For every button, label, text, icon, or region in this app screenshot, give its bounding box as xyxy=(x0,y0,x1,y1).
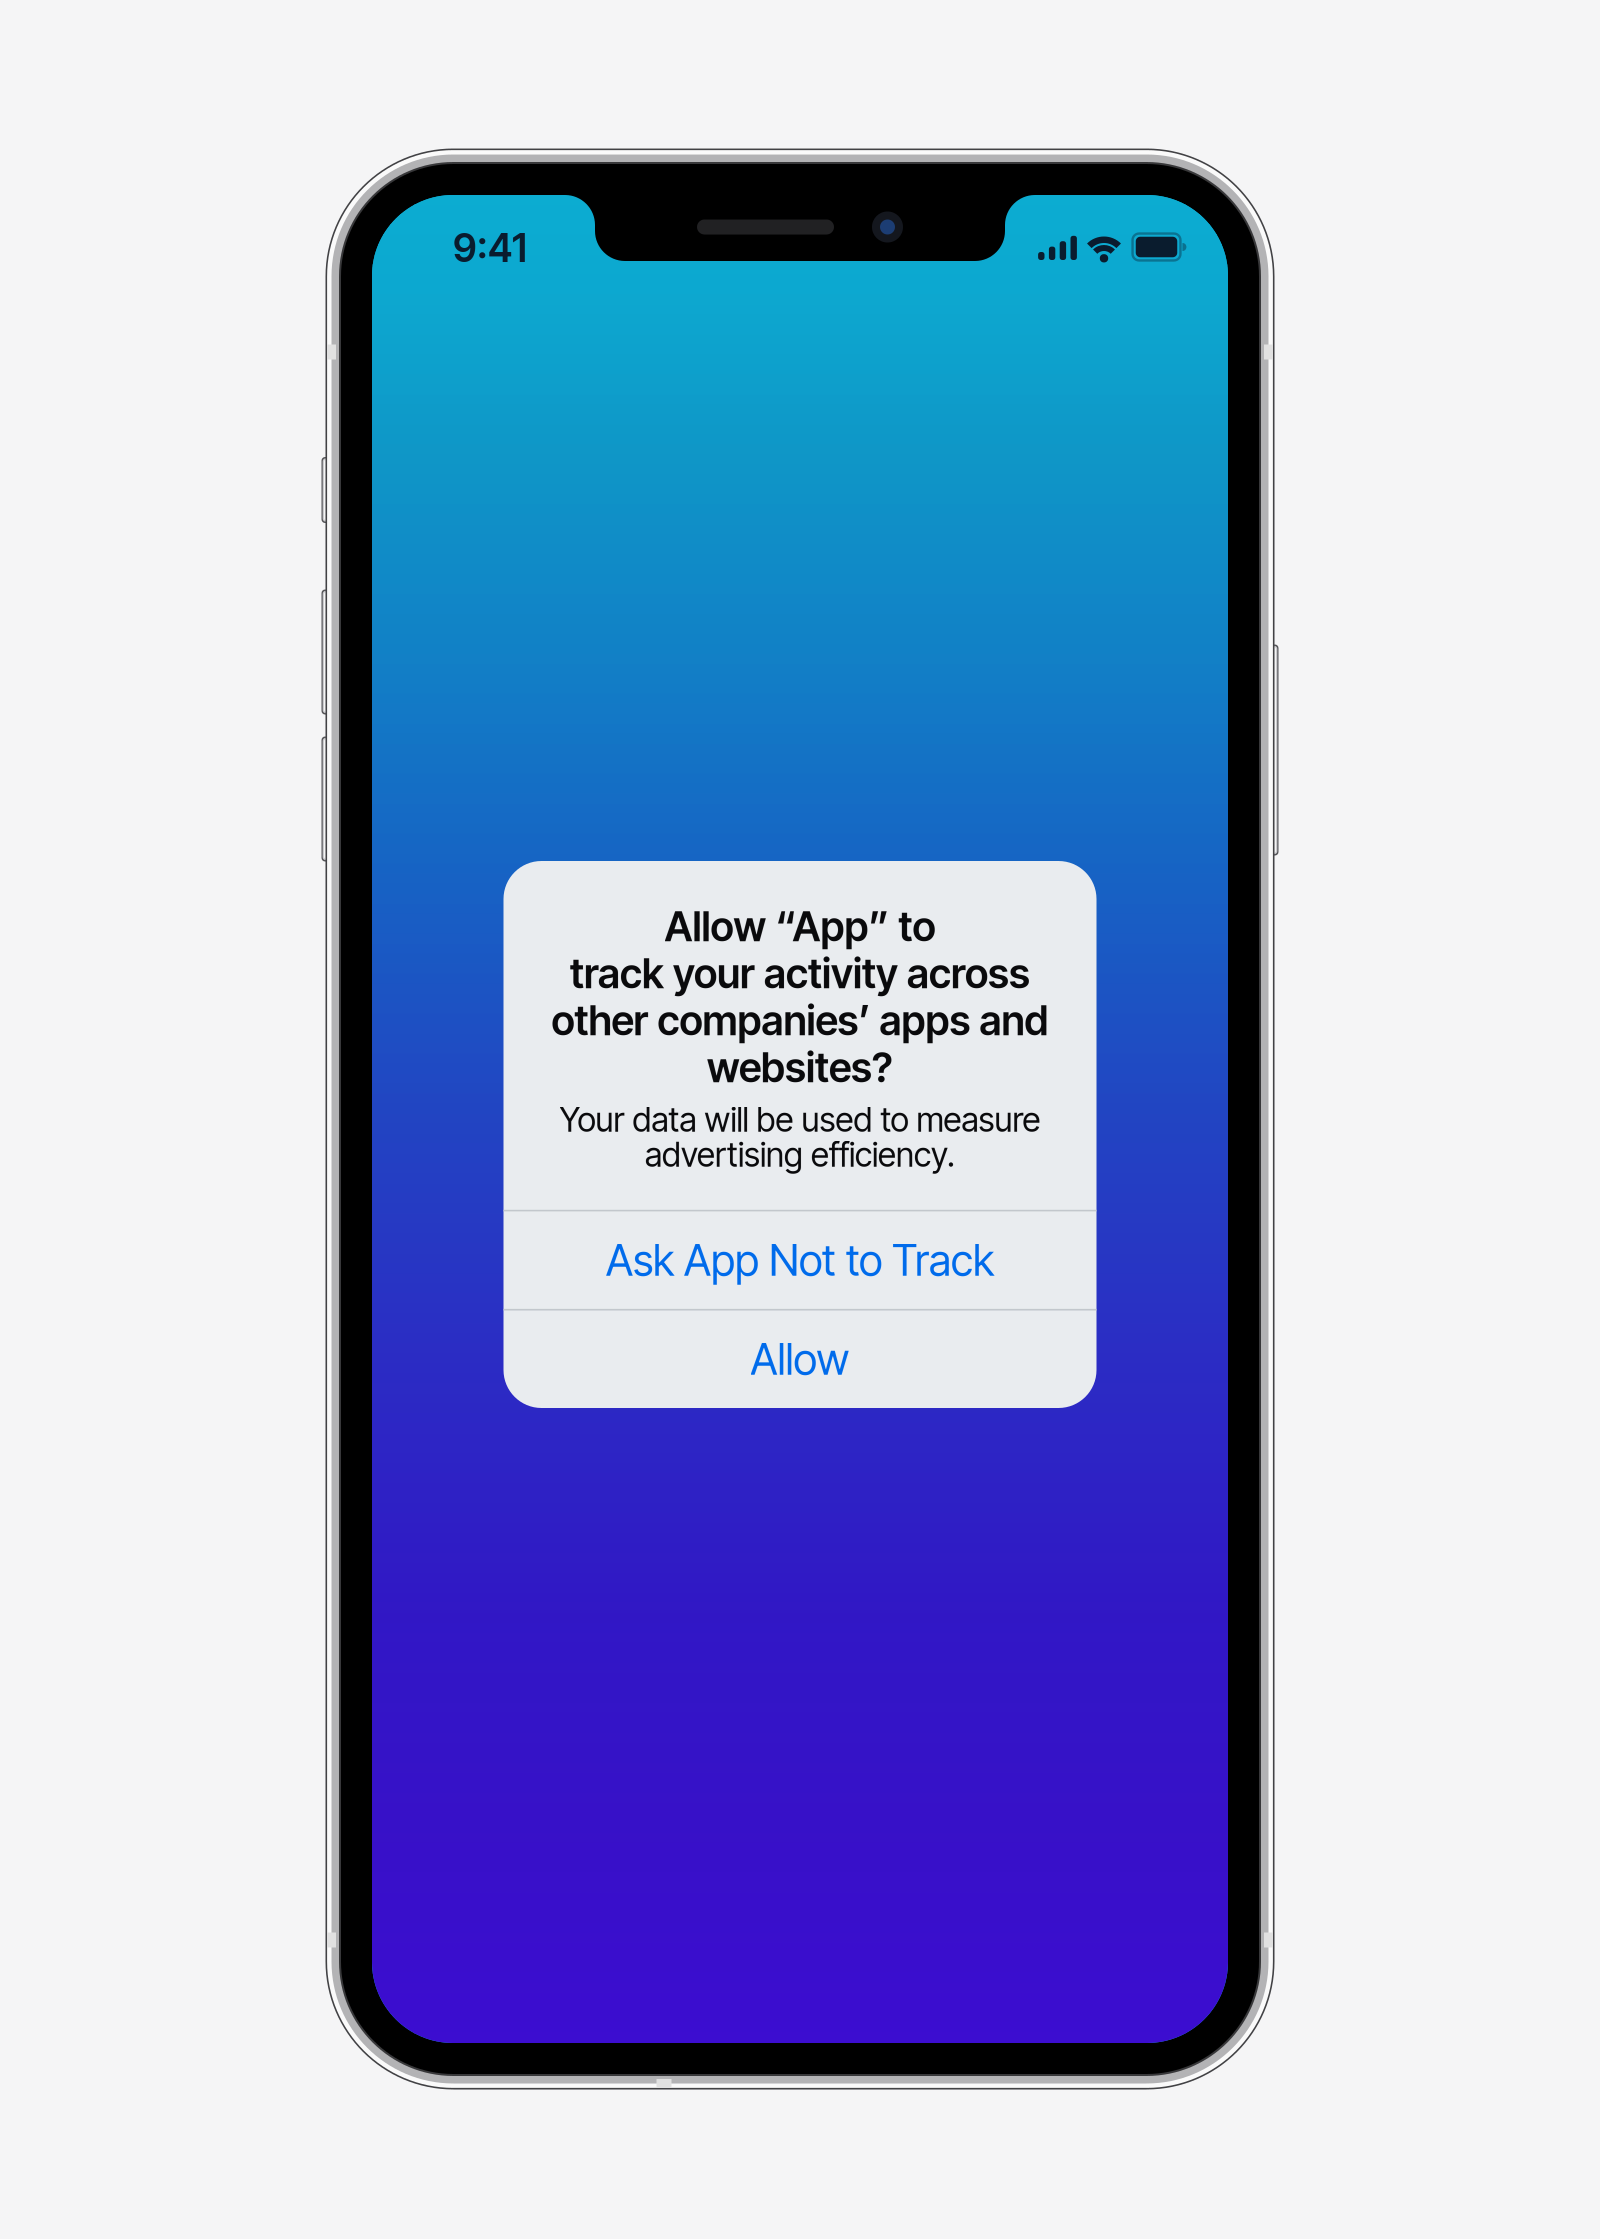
button[interactable]: Allow xyxy=(503,1310,1096,1408)
button[interactable]: Ask App Not to Track xyxy=(503,1211,1096,1309)
staticText: track your activity across xyxy=(570,949,1030,998)
staticText: websites? xyxy=(707,1043,893,1092)
staticText: Your data will be used to measure xyxy=(559,1099,1040,1140)
staticText: Allow xyxy=(750,1333,849,1385)
staticText: Allow “App” to xyxy=(664,902,935,951)
staticText: Ask App Not to Track xyxy=(606,1234,994,1286)
staticText: advertising efficiency. xyxy=(645,1134,955,1175)
staticText: 9:41 xyxy=(453,225,527,271)
staticText: other companies’ apps and xyxy=(551,996,1048,1045)
